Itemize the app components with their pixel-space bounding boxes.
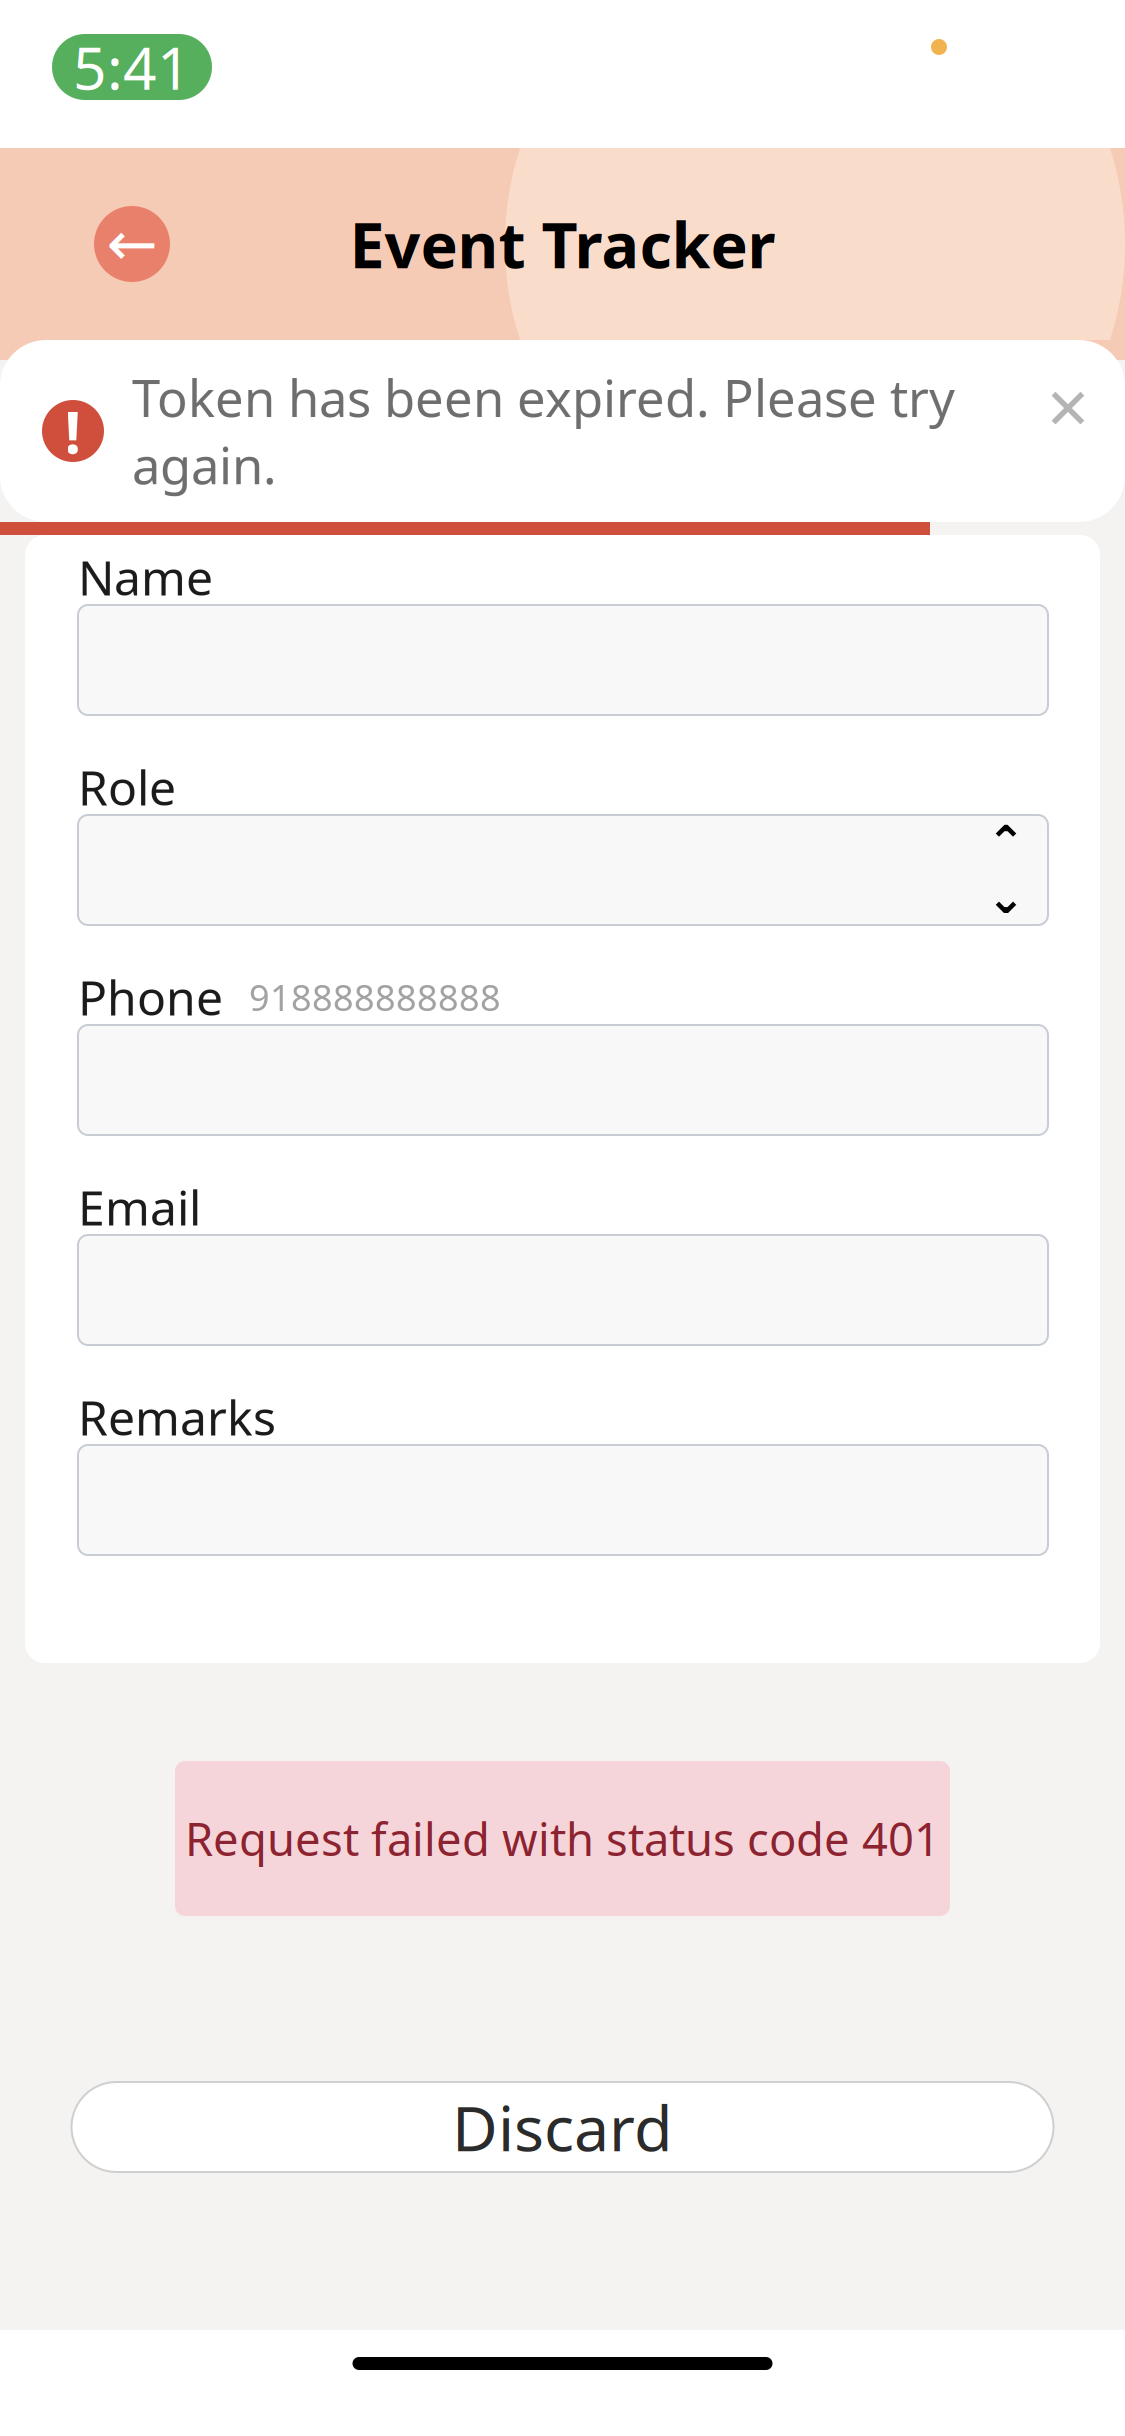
staticText: Name [78,545,213,609]
staticText: ! [64,392,81,470]
staticText: ⌃ [987,816,1025,868]
button[interactable]: Dismiss notification [1031,372,1105,446]
staticText: Token has been expired. Please try again… [132,364,955,498]
staticText: Role [78,755,176,819]
staticText: Discard [452,2085,673,2169]
button[interactable]: Phone [78,1025,1048,1135]
staticText: Event Tracker [349,202,775,286]
button[interactable]: Name [78,605,1048,715]
staticText: 5:41 [73,28,191,106]
staticText: Request failed with status code 401 [185,1808,940,1869]
staticText: Phone [78,965,223,1029]
staticText: 918888888888 [249,973,501,1021]
staticText: ← [106,209,157,279]
button[interactable]: Email [78,1235,1048,1345]
staticText: Email [78,1175,201,1239]
staticText: ⌄ [987,872,1025,923]
button[interactable]: Request failed with status code 401 [175,1761,950,1916]
staticText: Remarks [78,1385,276,1449]
button[interactable]: Back [94,206,170,282]
button[interactable]: Discard [71,2082,1053,2172]
button[interactable]: Remarks [78,1445,1048,1555]
button[interactable]: Role [78,815,1048,925]
staticText: ✕ [1044,377,1091,441]
